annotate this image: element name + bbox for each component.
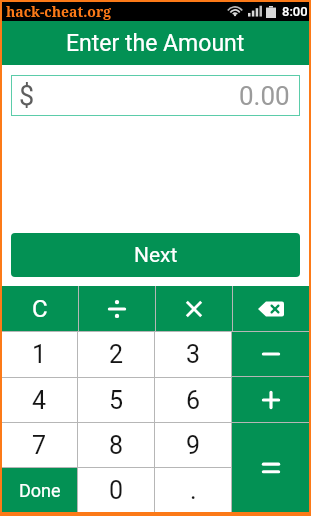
staticText: 0 [109,476,124,505]
button[interactable]: C [2,286,78,331]
button[interactable]: 5 [78,378,154,422]
button[interactable]: 3 [155,332,231,377]
button[interactable]: 0 [78,468,154,512]
staticText: 8 [109,431,124,460]
button[interactable]: Multiply [156,286,232,331]
staticText: Enter the Amount [66,30,245,57]
button[interactable]: . [155,468,231,512]
staticText: 8:00 [282,4,308,19]
staticText: 1 [32,340,47,369]
staticText: C [32,295,48,323]
button[interactable]: Done [2,468,77,512]
staticText: 5 [109,386,124,415]
button[interactable]: Backspace [233,286,309,331]
button[interactable]: 7 [2,423,77,467]
button[interactable]: Divide [79,286,155,331]
button[interactable]: Equals [232,423,309,512]
button[interactable]: Minus [232,332,309,376]
button[interactable]: Plus [232,377,309,422]
button[interactable]: 6 [155,378,231,422]
staticText: 0.00 [239,81,290,111]
button[interactable]: 8 [78,423,154,467]
button[interactable]: 4 [2,378,77,422]
button[interactable]: 9 [155,423,231,467]
button[interactable]: Next [11,233,300,277]
button[interactable]: $ [11,75,300,116]
staticText: 9 [186,431,201,460]
staticText: hack-cheat.org [6,2,112,21]
staticText: 6 [186,386,201,415]
staticText: Next [134,243,178,268]
button[interactable]: 2 [78,332,154,377]
staticText: 3 [186,340,201,369]
staticText: $ [19,80,35,112]
button[interactable]: 1 [2,332,77,377]
staticText: 2 [109,340,124,369]
staticText: Done [19,480,61,501]
staticText: . [190,476,197,505]
staticText: 7 [32,431,47,460]
staticText: 4 [32,386,47,415]
